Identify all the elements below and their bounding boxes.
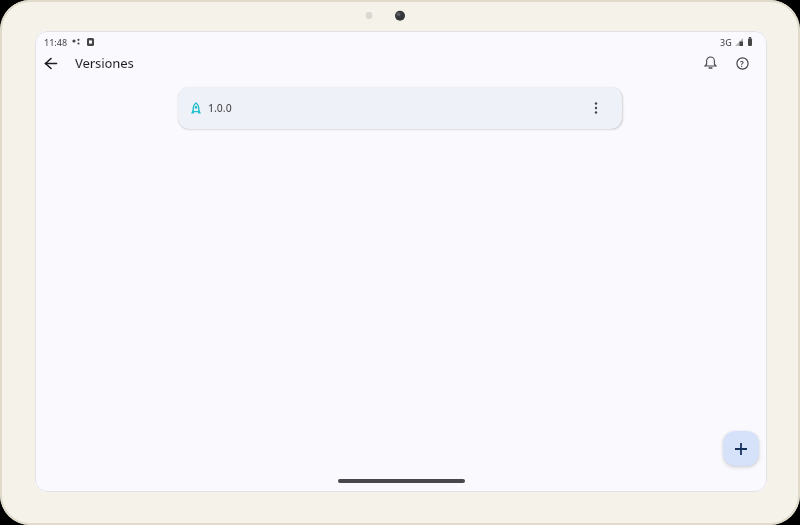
staticText: ? xyxy=(740,58,744,69)
button[interactable]: 1.0.0 xyxy=(178,87,622,129)
staticText: 3G xyxy=(720,36,732,48)
button[interactable] xyxy=(723,431,759,466)
staticText: 11:48 xyxy=(44,36,68,48)
button[interactable] xyxy=(37,49,65,77)
staticText: Versiones xyxy=(75,54,134,72)
staticText: 1.0.0 xyxy=(208,101,232,115)
button[interactable]: ? xyxy=(729,50,755,76)
button[interactable] xyxy=(697,50,723,76)
